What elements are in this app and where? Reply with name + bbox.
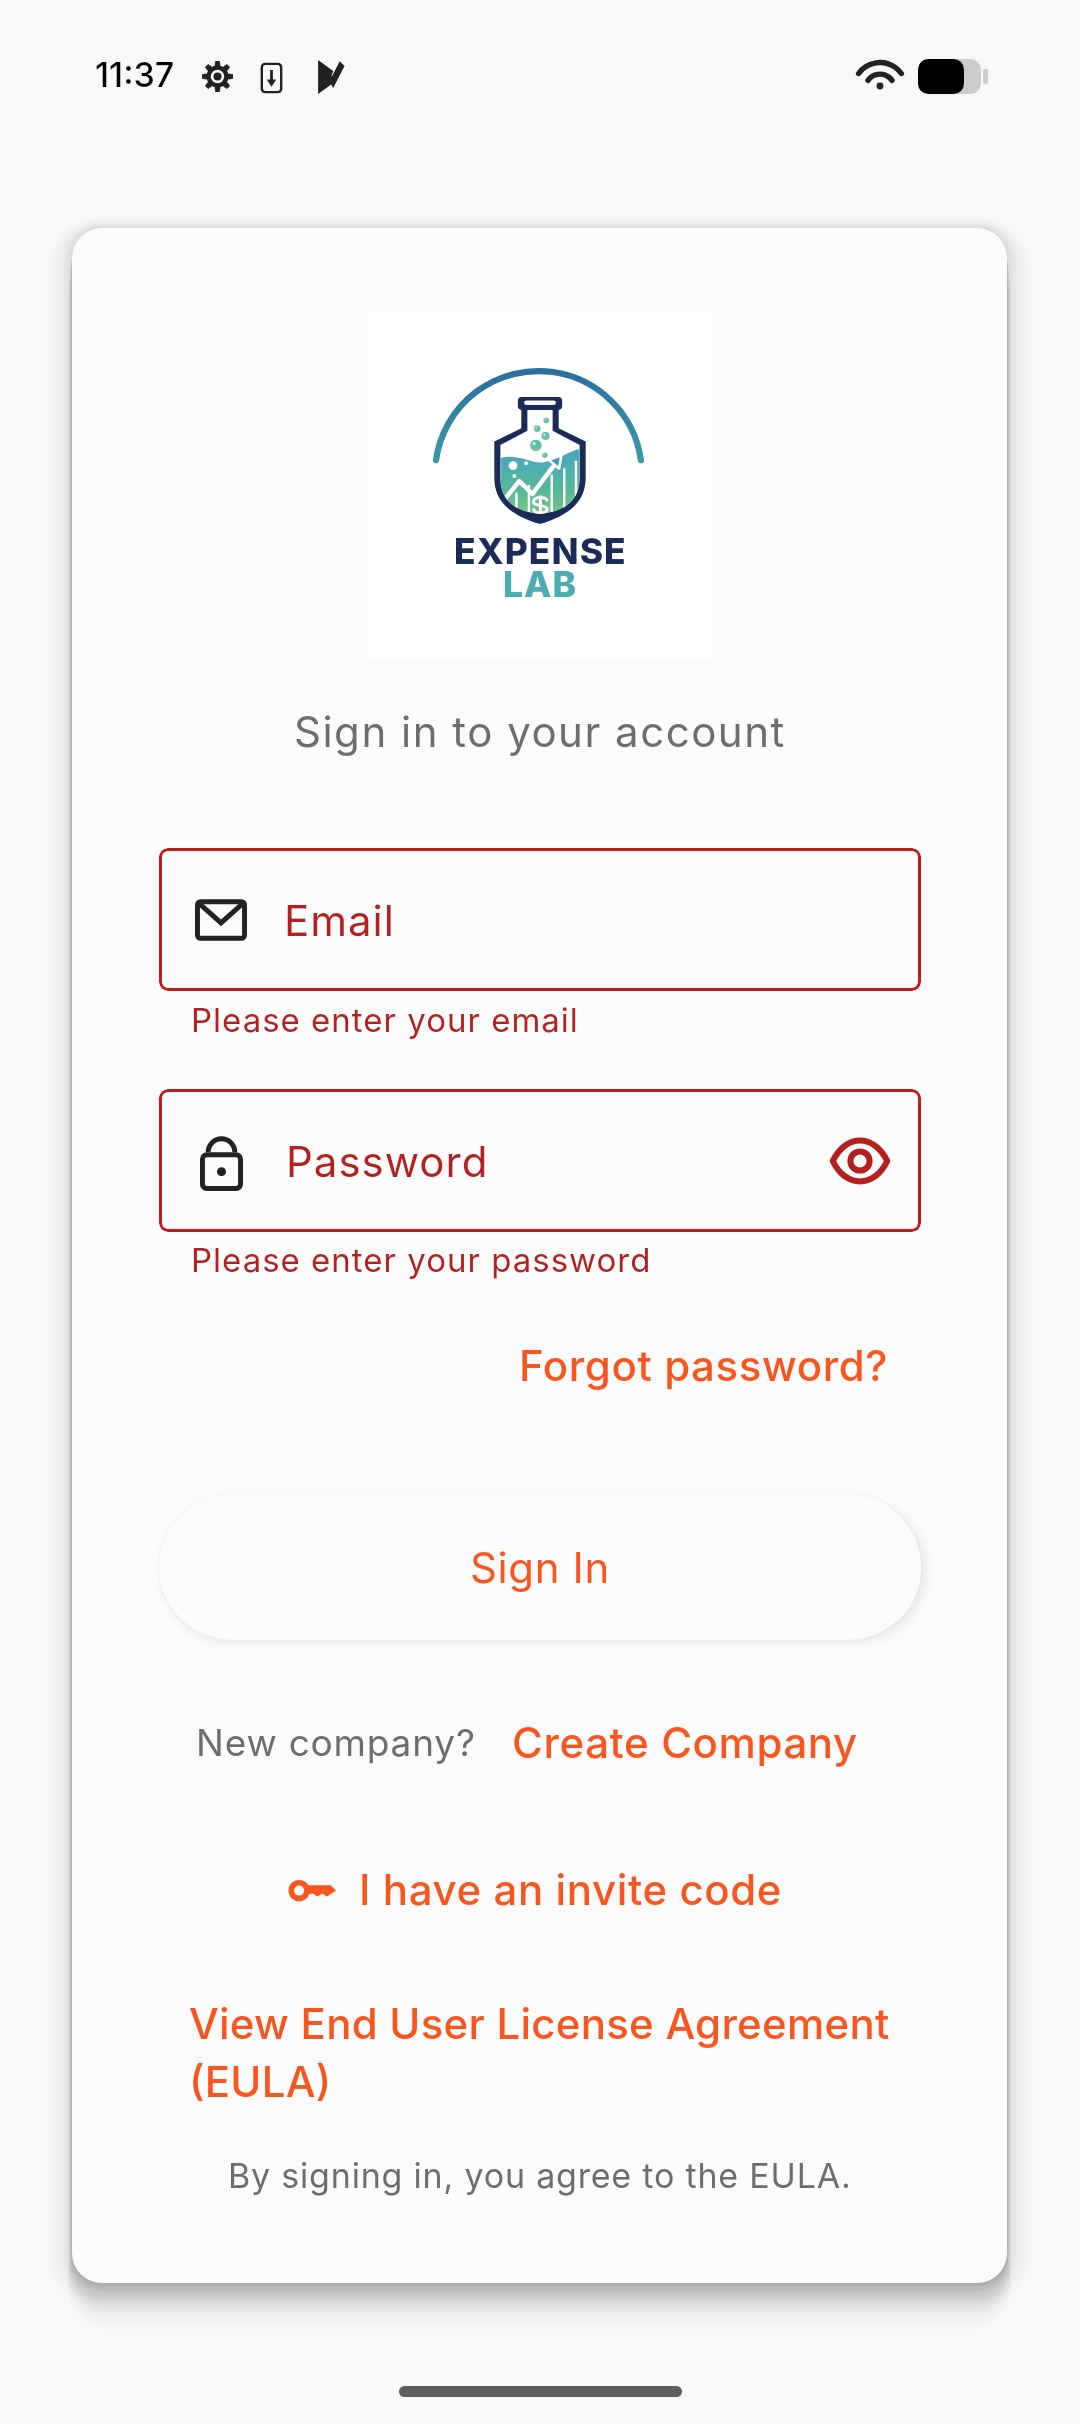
staticText: EXPENSE: [454, 530, 627, 573]
button[interactable]: View End User License Agreement (EULA): [189, 1998, 904, 2107]
button[interactable]: Sign In: [159, 1494, 921, 1640]
staticText: Password: [286, 1136, 489, 1187]
staticText: Sign in to your account: [294, 706, 786, 757]
button[interactable]: Forgot password?: [509, 1328, 921, 1403]
staticText: Forgot password?: [519, 1340, 889, 1391]
staticText: Please enter your password: [191, 1240, 652, 1280]
button[interactable]: Create Company: [512, 1717, 858, 1768]
staticText: Please enter your email: [191, 1000, 579, 1040]
staticText: By signing in, you agree to the EULA.: [228, 2155, 852, 2196]
button[interactable]: Show password: [805, 1106, 915, 1216]
staticText: Create Company: [512, 1717, 858, 1768]
staticText: 11:37: [95, 54, 175, 95]
staticText: View End User License Agreement (EULA): [189, 1998, 904, 2107]
button[interactable]: Email: [159, 848, 921, 991]
button[interactable]: I have an invite code: [288, 1864, 783, 1915]
staticText: I have an invite code: [359, 1864, 783, 1915]
staticText: LAB: [503, 563, 577, 606]
staticText: New company?: [196, 1720, 476, 1765]
staticText: Email: [284, 895, 395, 946]
staticText: Sign In: [470, 1542, 610, 1593]
button[interactable]: Password: [159, 1089, 921, 1232]
